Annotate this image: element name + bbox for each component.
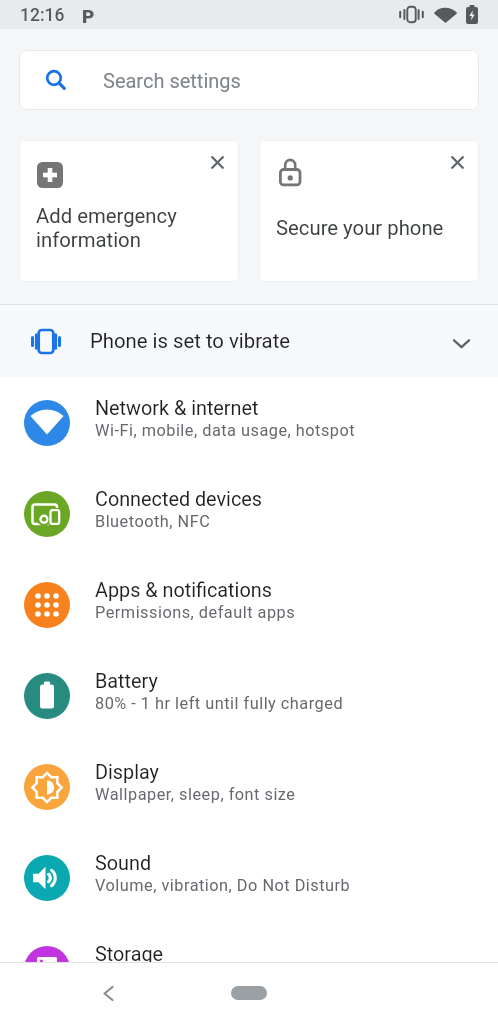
button[interactable]: Secure your phone — [259, 140, 479, 282]
staticText: Apps & notifications — [95, 579, 272, 602]
staticText: Battery — [95, 670, 158, 693]
staticText: Volume, vibration, Do Not Disturb — [95, 876, 351, 895]
button[interactable] — [92, 977, 124, 1009]
staticText: Network & internet — [95, 397, 259, 420]
button[interactable]: Apps & notifications — [0, 559, 498, 650]
button[interactable]: Search settings — [19, 50, 479, 110]
staticText: Permissions, default apps — [95, 603, 296, 622]
staticText: 80% - 1 hr left until fully charged — [95, 694, 344, 713]
button[interactable]: Add emergency information — [19, 140, 239, 282]
button[interactable]: Network & internet — [0, 377, 498, 468]
staticText: Phone is set to vibrate — [90, 329, 291, 353]
button[interactable] — [231, 986, 267, 1000]
staticText: Sound — [95, 852, 152, 875]
button[interactable] — [201, 146, 233, 178]
button[interactable]: Battery — [0, 650, 498, 741]
button[interactable]: Connected devices — [0, 468, 498, 559]
staticText: P — [82, 5, 95, 27]
staticText: Wi-Fi, mobile, data usage, hotspot — [95, 421, 356, 440]
staticText: Wallpaper, sleep, font size — [95, 785, 296, 804]
staticText: 12:16 — [20, 5, 65, 26]
staticText: Add emergency information — [36, 204, 177, 252]
button[interactable]: Phone is set to vibrate — [0, 305, 498, 377]
staticText: Connected devices — [95, 488, 262, 511]
button[interactable] — [441, 146, 473, 178]
button[interactable]: Storage — [0, 923, 498, 962]
staticText: Storage — [95, 943, 164, 962]
button[interactable]: Display — [0, 741, 498, 832]
staticText: Display — [95, 761, 159, 784]
button[interactable]: Sound — [0, 832, 498, 923]
staticText: Bluetooth, NFC — [95, 512, 211, 531]
staticText: Secure your phone — [276, 216, 444, 240]
staticText: Search settings — [103, 69, 241, 92]
